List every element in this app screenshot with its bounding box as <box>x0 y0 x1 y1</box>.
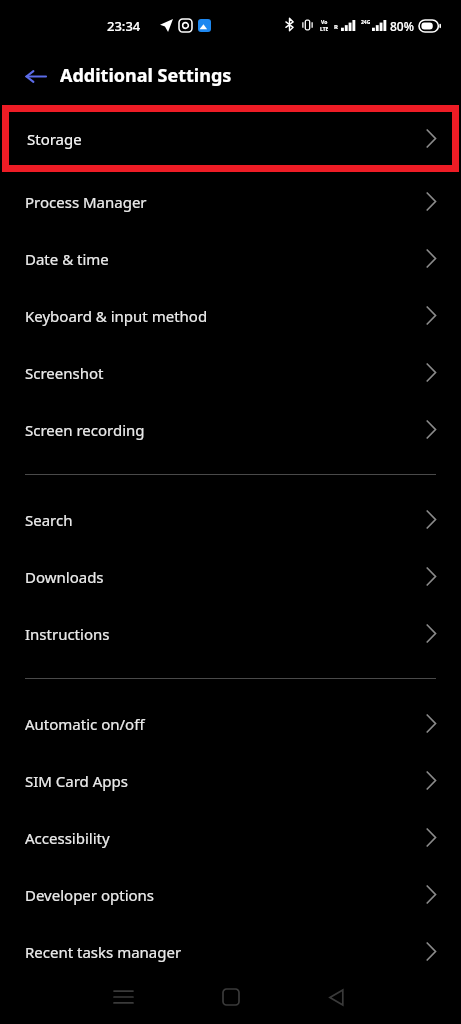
staticText: Storage <box>27 129 82 149</box>
button[interactable]: Process Manager <box>0 173 461 230</box>
staticText: Screenshot <box>25 363 104 383</box>
button[interactable]: Automatic on/off <box>0 695 461 752</box>
button[interactable]: Search <box>0 491 461 548</box>
staticText: Additional Settings <box>60 63 232 88</box>
button[interactable]: Recent tasks manager <box>0 923 461 980</box>
staticText: Accessibility <box>25 828 110 848</box>
staticText: Process Manager <box>25 192 147 212</box>
staticText: R <box>334 23 338 31</box>
staticText: Search <box>25 510 73 530</box>
staticText: Date & time <box>25 249 109 269</box>
button[interactable]: Back <box>313 974 359 1020</box>
button[interactable]: Home <box>208 974 254 1020</box>
button[interactable]: Developer options <box>0 866 461 923</box>
staticText: 24G <box>361 19 371 26</box>
staticText: Instructions <box>25 624 110 644</box>
button[interactable]: Storage <box>9 112 452 165</box>
staticText: LTE <box>320 26 329 33</box>
button[interactable]: Instructions <box>0 605 461 662</box>
button[interactable]: Screen recording <box>0 401 461 458</box>
button[interactable]: Menu <box>100 974 146 1020</box>
staticText: Keyboard & input method <box>25 306 208 326</box>
staticText: 23:34 <box>107 17 141 35</box>
staticText: Downloads <box>25 567 104 587</box>
button[interactable]: Screenshot <box>0 344 461 401</box>
button[interactable]: Keyboard & input method <box>0 287 461 344</box>
button[interactable]: Downloads <box>0 548 461 605</box>
staticText: 80% <box>390 18 414 34</box>
button[interactable]: Accessibility <box>0 809 461 866</box>
staticText: SIM Card Apps <box>25 771 128 791</box>
staticText: Developer options <box>25 885 155 905</box>
staticText: Recent tasks manager <box>25 942 182 962</box>
button[interactable]: Date & time <box>0 230 461 287</box>
button[interactable]: Back <box>14 55 56 97</box>
staticText: Vo <box>321 19 328 26</box>
staticText: Automatic on/off <box>25 714 145 734</box>
staticText: Screen recording <box>25 420 145 440</box>
button[interactable]: SIM Card Apps <box>0 752 461 809</box>
